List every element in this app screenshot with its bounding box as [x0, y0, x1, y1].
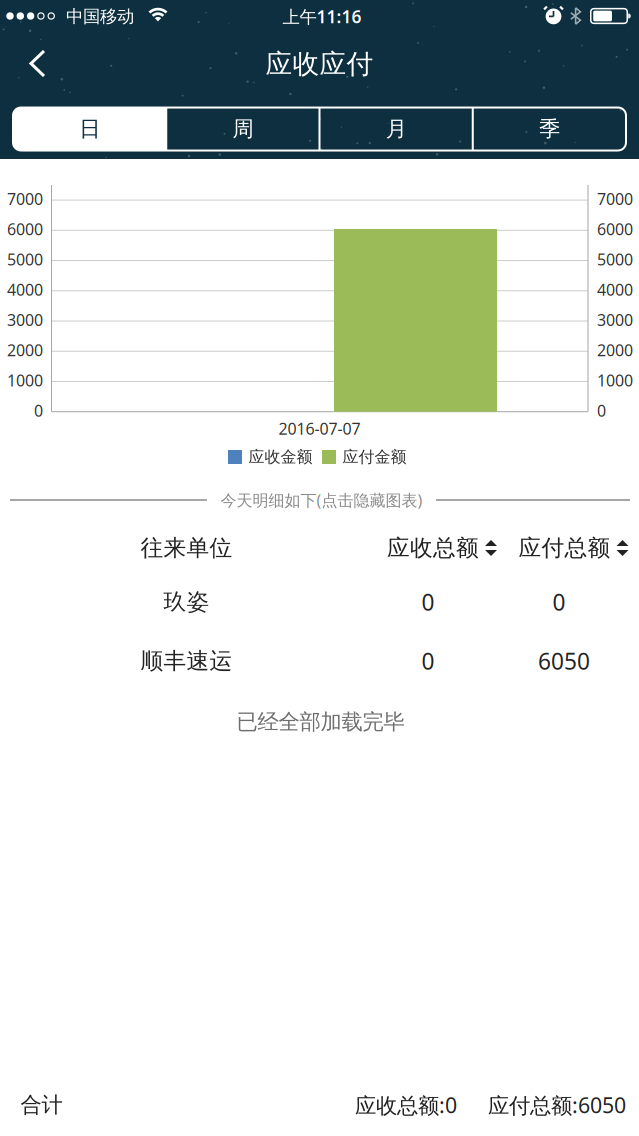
- staticText: 周: [232, 116, 253, 142]
- button[interactable]: 周: [166, 107, 319, 150]
- staticText: 6050: [538, 646, 590, 676]
- staticText: 顺丰速运: [140, 647, 232, 675]
- staticText: 月: [386, 116, 407, 142]
- staticText: 3000: [597, 309, 633, 330]
- staticText: 1000: [597, 370, 633, 391]
- staticText: 应收应付: [265, 48, 373, 80]
- staticText: 0: [597, 400, 606, 421]
- staticText: 日: [79, 116, 100, 142]
- staticText: 应收金额: [248, 447, 312, 467]
- staticText: 今天明细如下(点击隐藏图表): [220, 489, 422, 511]
- staticText: 1000: [7, 370, 43, 391]
- staticText: 5000: [7, 249, 43, 270]
- button[interactable]: 应收总额: [387, 534, 497, 562]
- staticText: 应收总额: [387, 534, 479, 562]
- staticText: 0: [421, 646, 434, 676]
- staticText: 5000: [597, 249, 633, 270]
- staticText: 6000: [597, 218, 633, 240]
- staticText: 往来单位: [140, 534, 232, 562]
- button[interactable]: 今天明细如下(点击隐藏图表): [220, 489, 422, 511]
- staticText: 上午11:16: [282, 5, 361, 28]
- button[interactable]: 季: [473, 107, 626, 150]
- button[interactable]: Back: [19, 41, 59, 85]
- staticText: 应付金额: [342, 447, 406, 467]
- staticText: 0: [552, 587, 565, 617]
- staticText: 2000: [7, 339, 43, 361]
- staticText: 7000: [597, 188, 633, 209]
- staticText: 2000: [597, 339, 633, 361]
- staticText: 3000: [7, 309, 43, 330]
- button[interactable]: 日: [13, 107, 166, 150]
- staticText: 玖姿: [163, 588, 209, 616]
- button[interactable]: 月: [319, 107, 473, 150]
- staticText: 4000: [597, 279, 633, 300]
- staticText: 已经全部加载完毕: [236, 709, 404, 735]
- staticText: 应付总额: [518, 534, 610, 562]
- staticText: 0: [34, 400, 43, 421]
- staticText: 0: [421, 587, 434, 617]
- staticText: 应付总额:6050: [488, 1091, 626, 1119]
- staticText: 6000: [7, 218, 43, 240]
- staticText: 应收总额:0: [355, 1091, 457, 1119]
- staticText: 中国移动: [66, 6, 134, 27]
- staticText: 2016-07-07: [278, 418, 360, 439]
- staticText: 合计: [20, 1092, 62, 1118]
- staticText: 4000: [7, 279, 43, 300]
- button[interactable]: 应付总额: [518, 534, 628, 562]
- staticText: 7000: [7, 188, 43, 209]
- staticText: 季: [539, 116, 560, 142]
